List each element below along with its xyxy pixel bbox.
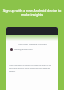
staticText: name@gmail.com bbox=[14, 48, 33, 51]
staticText: Your Google Account is used to sign in t… bbox=[9, 64, 55, 73]
staticText: Use your Google Account bbox=[18, 42, 47, 45]
button[interactable]: name@gmail.com bbox=[9, 47, 34, 52]
staticText: Sign up with a new Android device to mak… bbox=[2, 8, 62, 17]
